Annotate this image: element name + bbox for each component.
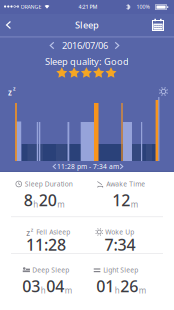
staticText: Sleep quality: Good (45, 55, 129, 68)
staticText: ORANGE (20, 3, 41, 10)
staticText: z (31, 226, 34, 233)
staticText: 26 (120, 275, 138, 297)
staticText: 12 (112, 189, 130, 211)
staticText: h (115, 285, 120, 296)
staticText: z (13, 85, 16, 92)
staticText: 04 (46, 275, 64, 297)
staticText: 2016/07/06 (62, 39, 108, 52)
button[interactable]: Later (118, 163, 124, 170)
staticText: 4:21 PM (78, 3, 97, 10)
staticText: m (139, 285, 146, 296)
button[interactable]: Earlier (51, 163, 57, 170)
staticText: m (65, 285, 72, 296)
staticText: 11:28 pm - 7:34 am (57, 162, 119, 171)
staticText: Deep Sleep (32, 266, 69, 274)
staticText: 11:28 (26, 234, 66, 255)
staticText: z (26, 227, 30, 238)
staticText: 7:34 (104, 234, 135, 255)
staticText: Fell Asleep (36, 228, 70, 236)
staticText: 03 (22, 275, 40, 297)
staticText: h (33, 199, 38, 210)
staticText: Sleep (75, 19, 99, 31)
button[interactable]: Calendar (150, 17, 166, 33)
staticText: m (57, 199, 64, 210)
staticText: 100% (136, 3, 149, 10)
staticText: Woke Up (105, 228, 134, 236)
staticText: z (8, 87, 12, 98)
staticText: h (41, 285, 46, 296)
staticText: Light Sleep (103, 266, 138, 274)
staticText: Sleep Duration (25, 180, 73, 188)
button[interactable]: Back (1, 17, 15, 33)
staticText: 01 (96, 275, 114, 297)
staticText: Awake Time (106, 180, 145, 188)
button[interactable]: Previous day (48, 41, 56, 50)
staticText: m (131, 199, 138, 210)
button[interactable]: Next day (113, 41, 121, 50)
staticText: 8 (24, 189, 33, 211)
staticText: 20 (39, 189, 57, 211)
